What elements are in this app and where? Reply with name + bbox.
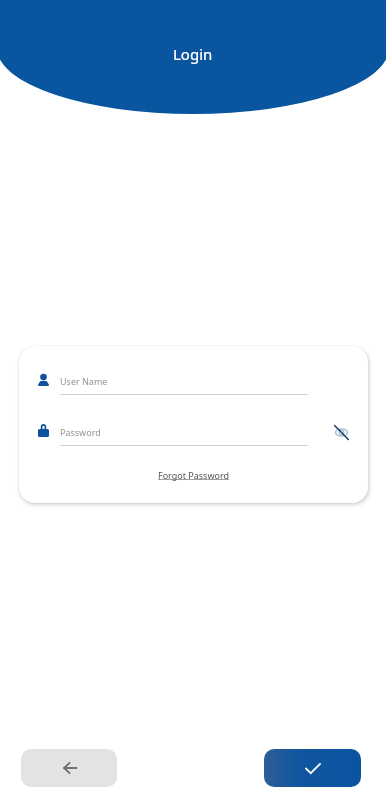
button[interactable]: Forgot Password (158, 469, 230, 481)
staticText: User Name (60, 375, 108, 387)
button[interactable] (31, 417, 331, 451)
button[interactable] (31, 366, 331, 400)
button[interactable]: Confirm (264, 749, 361, 787)
button[interactable]: Back (21, 749, 117, 787)
staticText: Password (60, 426, 101, 438)
staticText: Login (173, 44, 213, 64)
button[interactable]: Show password (326, 417, 356, 447)
